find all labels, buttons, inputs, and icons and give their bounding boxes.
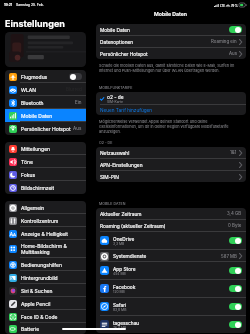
staticText: Netzauswahl bbox=[100, 150, 130, 156]
button[interactable]: Toggle bbox=[69, 73, 82, 80]
button[interactable]: Facebook bbox=[96, 280, 246, 297]
staticText: 1&1 bbox=[230, 150, 237, 155]
staticText: Datenoptionen bbox=[100, 39, 134, 45]
button[interactable]: Neuen Tarif hinzufügen bbox=[96, 105, 246, 115]
staticText: App Store bbox=[113, 266, 136, 272]
button[interactable]: WLAN bbox=[5, 83, 86, 96]
staticText: Face ID & Code bbox=[21, 314, 82, 320]
staticText: Persönlicher Hotspot bbox=[100, 51, 148, 57]
staticText: 19:21 bbox=[4, 3, 13, 7]
staticText: Bildschirmzeit bbox=[21, 185, 82, 191]
button[interactable]: Bildschirmzeit bbox=[5, 181, 86, 194]
button[interactable]: Anzeige & Helligkeit bbox=[5, 227, 86, 240]
staticText: 0 Byte bbox=[228, 223, 242, 228]
button[interactable]: Flugmodus bbox=[5, 70, 86, 83]
staticText: tagesschau bbox=[113, 320, 140, 326]
staticText: 76,4 MB bbox=[113, 326, 127, 330]
staticText: O2 - DE bbox=[99, 141, 113, 145]
button[interactable]: Bluetooth bbox=[5, 96, 86, 109]
staticText: MOBILE DATEN bbox=[99, 202, 126, 206]
staticText: Bluetooth bbox=[21, 100, 75, 106]
staticText: Kontrollzentrum bbox=[21, 218, 82, 224]
staticText: Aus bbox=[73, 126, 82, 132]
button[interactable]: Toggle bbox=[229, 321, 242, 328]
button[interactable]: Persönlicher Hotspot bbox=[96, 48, 246, 59]
button[interactable]: Toggle bbox=[229, 267, 242, 274]
staticText: Mobile Daten bbox=[154, 11, 188, 17]
button[interactable]: APN-Einstellungen bbox=[96, 159, 246, 170]
staticText: o2 - de bbox=[107, 94, 124, 100]
staticText: Anzeige & Helligkeit bbox=[21, 231, 82, 237]
button[interactable]: Roaming (aktueller Zeitraum) bbox=[96, 220, 246, 231]
staticText: 454 MB bbox=[113, 272, 126, 276]
button[interactable]: Toggle bbox=[229, 303, 242, 310]
staticText: Aktueller Zeitraum bbox=[100, 211, 142, 217]
button[interactable]: Mitteilungen bbox=[5, 142, 86, 155]
button[interactable]: Hintergrundbild bbox=[5, 271, 86, 284]
staticText: Siri & Suchen bbox=[21, 288, 82, 294]
staticText: Facebook bbox=[113, 284, 136, 290]
staticText: 79 % bbox=[231, 4, 238, 7]
staticText: Roaming ein bbox=[211, 39, 237, 44]
button[interactable]: Fokus bbox=[5, 168, 86, 181]
button[interactable]: Allgemein bbox=[5, 201, 86, 214]
button[interactable]: Toggle bbox=[229, 26, 242, 33]
staticText: 83,8 MB bbox=[113, 308, 127, 312]
button[interactable]: Siri & Suchen bbox=[5, 284, 86, 297]
staticText: Systemdienste bbox=[113, 253, 221, 259]
staticText: Mitteilungen bbox=[21, 146, 82, 152]
button[interactable]: Toggle bbox=[229, 237, 242, 244]
button[interactable]: SIM-PIN bbox=[96, 171, 246, 182]
button[interactable]: OneDrive bbox=[96, 232, 246, 249]
button[interactable]: Systemdienste bbox=[96, 250, 246, 262]
staticText: 3,3 MB bbox=[113, 242, 125, 246]
button[interactable]: Bedienungshilfen bbox=[5, 258, 86, 271]
staticText: OneDrive bbox=[113, 236, 135, 242]
button[interactable] bbox=[5, 32, 86, 67]
button[interactable]: Mobile Daten bbox=[96, 24, 246, 35]
button[interactable]: Batterie bbox=[5, 323, 86, 334]
staticText: Ein bbox=[75, 100, 82, 106]
staticText: SIM-PIN bbox=[100, 174, 119, 180]
button[interactable]: Kontrollzentrum bbox=[5, 214, 86, 227]
staticText: Bedienungshilfen bbox=[21, 262, 82, 268]
button[interactable]: Toggle bbox=[229, 285, 242, 292]
staticText: 587 MB bbox=[221, 254, 237, 259]
staticText: Persönlicher Hotspot bbox=[21, 126, 73, 132]
staticText: Mobile Daten bbox=[21, 113, 82, 119]
staticText: Neuen Tarif hinzufügen bbox=[100, 107, 153, 113]
button[interactable]: Apple Pencil bbox=[5, 297, 86, 310]
staticText: Fokus bbox=[21, 172, 82, 178]
staticText: 3,4 GB bbox=[227, 211, 242, 216]
staticText: Schalte die mobilen Daten aus, damit säm… bbox=[99, 63, 243, 73]
staticText: Töne bbox=[21, 159, 82, 165]
staticText: Einstellungen bbox=[5, 18, 65, 29]
staticText: Aus bbox=[229, 51, 237, 56]
button[interactable]: Mobile Daten bbox=[5, 109, 86, 122]
staticText: SIM-Karte bbox=[107, 100, 123, 104]
button[interactable]: Aktueller Zeitraum bbox=[96, 208, 246, 219]
button[interactable]: Face ID & Code bbox=[5, 310, 86, 323]
staticText: MOBILFUNKTARIFE bbox=[99, 86, 133, 90]
button[interactable]: Persönlicher Hotspot bbox=[5, 122, 86, 135]
staticText: Hintergrundbild bbox=[21, 275, 82, 281]
staticText: Home-Bildschirm & Multitasking bbox=[21, 243, 82, 256]
staticText: APN-Einstellungen bbox=[100, 162, 143, 168]
button[interactable]: Datenoptionen bbox=[96, 36, 246, 47]
button[interactable]: Netzauswahl bbox=[96, 147, 246, 158]
staticText: Safari bbox=[113, 302, 127, 308]
staticText: Flugmodus bbox=[21, 74, 69, 80]
staticText: Mobile Daten bbox=[100, 27, 130, 33]
staticText: Samstag 25. Feb. bbox=[16, 3, 44, 7]
button[interactable]: tagesschau bbox=[96, 316, 246, 333]
staticText: 120 MB bbox=[113, 290, 125, 294]
button[interactable]: Safari bbox=[96, 298, 246, 315]
button[interactable]: o2 - de bbox=[96, 92, 246, 105]
staticText: Möglicherweise verwendet Apple deinen St… bbox=[99, 119, 243, 134]
staticText: Roaming (aktueller Zeitraum) bbox=[100, 223, 166, 229]
button[interactable]: Töne bbox=[5, 155, 86, 168]
button[interactable]: App Store bbox=[96, 262, 246, 279]
staticText: WLAN bbox=[21, 87, 66, 93]
button[interactable]: Home-Bildschirm & Multitasking bbox=[5, 240, 86, 258]
